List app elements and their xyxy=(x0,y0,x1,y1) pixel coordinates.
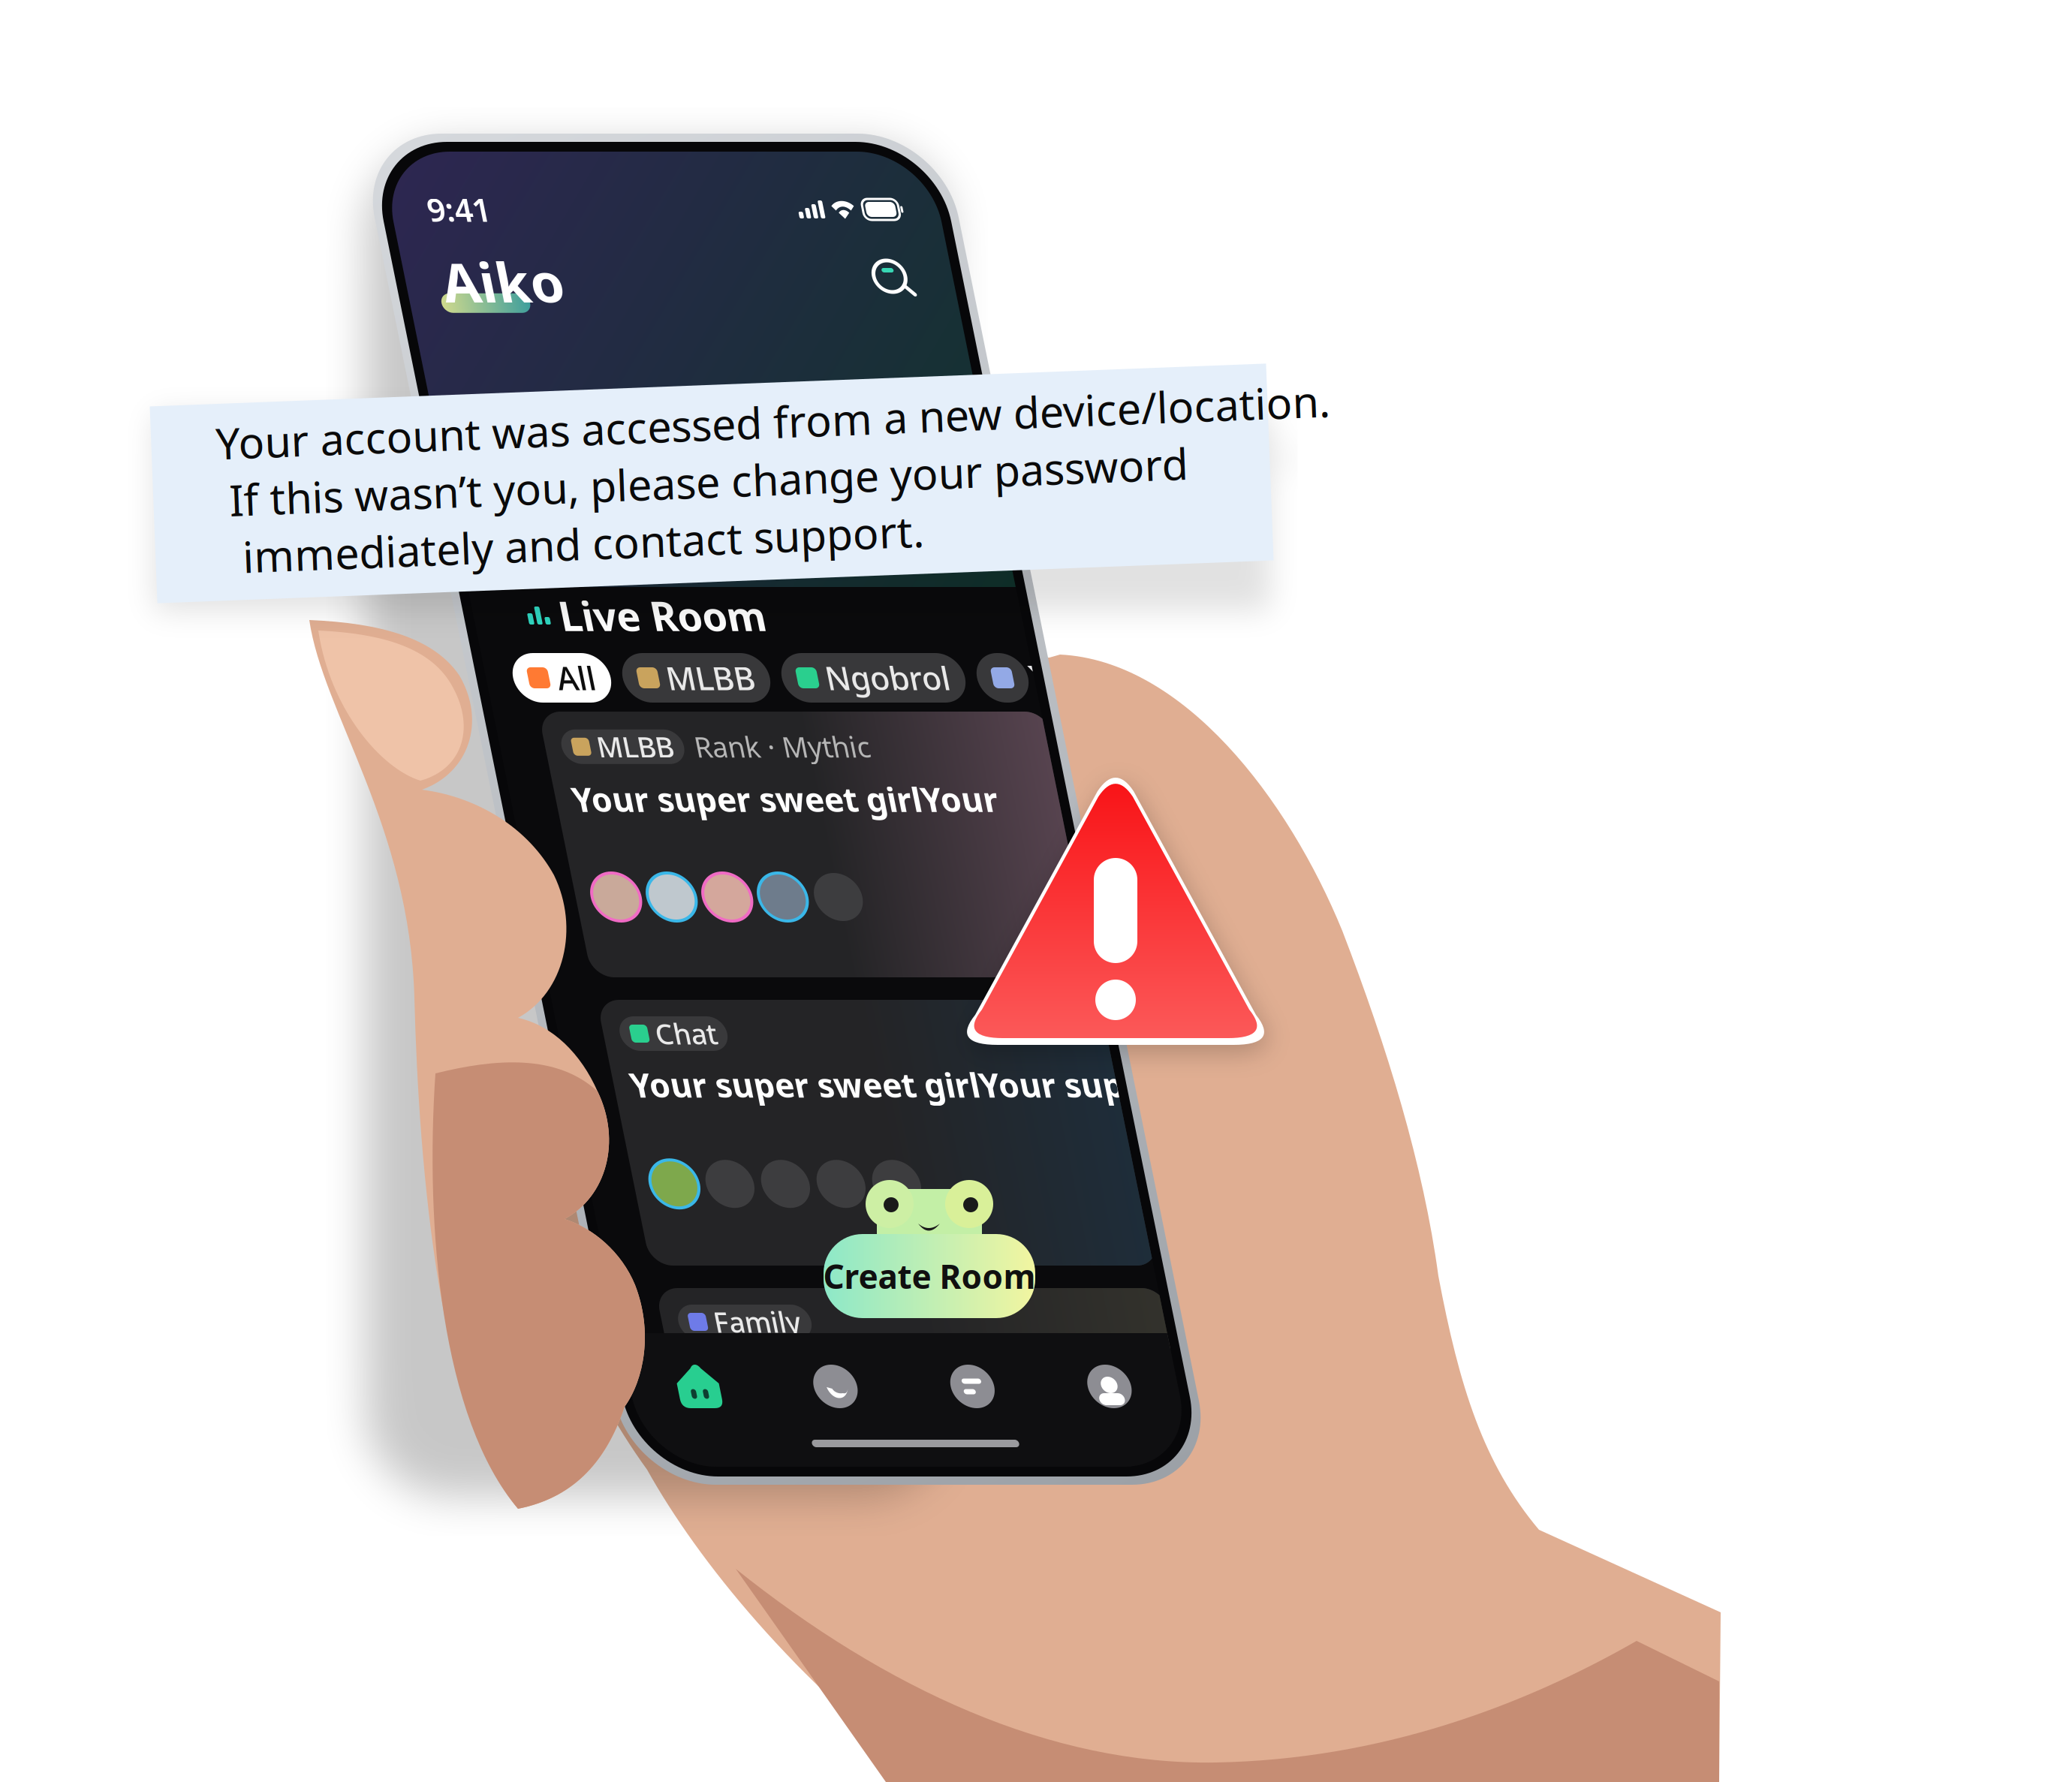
button[interactable]: All xyxy=(540,653,637,703)
staticText: Family xyxy=(610,1303,697,1340)
staticText: All xyxy=(583,657,622,699)
button[interactable]: MLBB xyxy=(649,653,797,703)
staticText: Chat xyxy=(610,1015,671,1052)
button[interactable]: Calls xyxy=(650,1333,787,1440)
staticText: MLBB xyxy=(693,657,782,699)
staticText: immediately and contact support. xyxy=(218,510,922,567)
staticText: Your account was accessed from a new dev… xyxy=(218,395,1333,453)
button[interactable]: Create Room xyxy=(813,1192,1046,1342)
staticText: If this wasn’t you, please change your p… xyxy=(218,453,1188,510)
staticText: Create Room xyxy=(823,1254,1036,1298)
staticText: Live Room xyxy=(598,589,805,642)
button[interactable]: Ngobrol xyxy=(809,653,992,703)
button[interactable]: Feed xyxy=(787,1333,924,1440)
button[interactable]: Home xyxy=(513,1333,650,1440)
staticText: Your super sweet girlYour xyxy=(574,777,1000,821)
staticText: Aiko xyxy=(549,246,670,317)
staticText: MLBB xyxy=(610,728,686,765)
staticText: Ngobrol xyxy=(852,657,977,699)
staticText: Your super sweet girlYour super sweet xyxy=(574,1063,1209,1107)
staticText: Rank · Mythic xyxy=(707,728,883,765)
button[interactable]: Family xyxy=(538,1288,1086,1378)
button[interactable]: Profile xyxy=(924,1333,1061,1440)
button[interactable]: MLBB xyxy=(538,712,1086,1000)
button[interactable] xyxy=(1004,653,1055,703)
button[interactable]: Chat xyxy=(538,1000,1086,1288)
